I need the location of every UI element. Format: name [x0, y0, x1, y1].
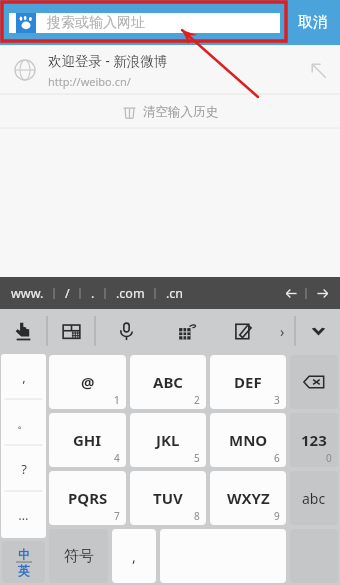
- staticText: 9: [274, 509, 280, 523]
- staticText: 清空输入历史: [143, 104, 218, 120]
- staticText: ,: [132, 547, 136, 566]
- staticText: PQRS: [68, 488, 108, 508]
- staticText: .cn: [166, 285, 184, 302]
- button[interactable]: Backspace: [290, 355, 338, 409]
- button[interactable]: Notes: [218, 309, 269, 353]
- button[interactable]: ,: [112, 529, 156, 583]
- button[interactable]: Switch Chinese English: [2, 541, 45, 583]
- staticText: 2: [194, 393, 200, 407]
- staticText: DEF: [234, 372, 262, 392]
- button[interactable]: www.: [8, 280, 47, 307]
- staticText: 英: [18, 563, 30, 578]
- staticText: /: [65, 285, 70, 302]
- staticText: ?: [21, 460, 27, 478]
- staticText: …: [18, 506, 29, 524]
- staticText: TUV: [153, 488, 183, 508]
- button[interactable]: Use this URL: [296, 45, 340, 95]
- button[interactable]: 取消: [286, 0, 340, 45]
- button[interactable]: DEF: [210, 355, 286, 409]
- staticText: JKL: [156, 430, 180, 450]
- staticText: ›: [280, 322, 285, 341]
- button[interactable]: JKL: [130, 413, 206, 467]
- button[interactable]: …: [1, 492, 46, 538]
- button[interactable]: 符号: [49, 529, 108, 583]
- button[interactable]: .cn: [163, 280, 187, 307]
- button[interactable]: /: [62, 280, 73, 307]
- button[interactable]: @: [49, 355, 126, 409]
- staticText: .: [91, 285, 95, 302]
- button[interactable]: Previous: [276, 278, 306, 308]
- staticText: 中: [18, 547, 30, 562]
- button[interactable]: .com: [113, 280, 148, 307]
- button[interactable]: ABC: [130, 355, 206, 409]
- staticText: 5: [194, 451, 200, 465]
- staticText: 。: [17, 415, 30, 431]
- staticText: 0: [326, 451, 332, 465]
- button[interactable]: Layout: [48, 309, 95, 353]
- staticText: @: [81, 372, 95, 392]
- button[interactable]: Keypad mode: [157, 309, 218, 353]
- button[interactable]: abc: [290, 471, 338, 525]
- button[interactable]: GHI: [49, 413, 126, 467]
- staticText: ,: [22, 368, 26, 386]
- staticText: .com: [116, 285, 145, 302]
- button[interactable]: Handwriting: [0, 309, 47, 353]
- button[interactable]: 123: [290, 413, 338, 467]
- button[interactable]: 欢迎登录 - 新浪微博: [0, 45, 340, 95]
- button[interactable]: PQRS: [49, 471, 126, 525]
- button[interactable]: ,: [1, 354, 46, 400]
- staticText: 欢迎登录 - 新浪微博: [48, 52, 168, 70]
- button[interactable]: Hide keyboard: [296, 309, 340, 353]
- staticText: 4: [114, 451, 120, 465]
- staticText: 6: [274, 451, 280, 465]
- staticText: GHI: [73, 430, 102, 450]
- staticText: www.: [11, 285, 44, 302]
- staticText: ABC: [153, 372, 183, 392]
- staticText: WXYZ: [227, 488, 270, 508]
- staticText: 7: [114, 509, 120, 523]
- staticText: 搜索或输入网址: [47, 14, 145, 32]
- button[interactable]: MNO: [210, 413, 286, 467]
- staticText: abc: [302, 489, 326, 508]
- button[interactable]: .: [88, 280, 98, 307]
- staticText: 3: [274, 393, 280, 407]
- button[interactable]: ?: [1, 446, 46, 492]
- staticText: 1: [114, 393, 120, 407]
- staticText: http://weibo.cn/: [48, 74, 131, 89]
- button[interactable]: 。: [1, 400, 46, 446]
- button[interactable]: More options: [269, 309, 295, 353]
- button[interactable]: 清空输入历史: [0, 95, 340, 129]
- staticText: 符号: [64, 547, 94, 566]
- staticText: 8: [194, 509, 200, 523]
- staticText: 123: [301, 430, 327, 450]
- button[interactable]: Next: [307, 278, 337, 308]
- button[interactable]: TUV: [130, 471, 206, 525]
- button[interactable]: 搜索或输入网址: [9, 13, 280, 33]
- button[interactable]: Voice input: [96, 309, 157, 353]
- button[interactable]: WXYZ: [210, 471, 286, 525]
- staticText: MNO: [229, 430, 268, 450]
- staticText: 取消: [298, 13, 328, 32]
